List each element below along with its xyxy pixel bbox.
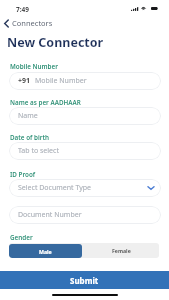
staticText: Name (18, 111, 38, 121)
button[interactable]: Back (3, 17, 54, 29)
staticText: Date of birth (10, 133, 50, 142)
staticText: Gender (10, 233, 33, 242)
staticText: Connectors (12, 18, 53, 28)
staticText: Select Document Type (18, 183, 92, 193)
button[interactable]: Tab to select (9, 142, 161, 160)
button[interactable]: Document Number (9, 206, 161, 224)
button[interactable]: Submit (0, 271, 169, 289)
button[interactable]: +91 (9, 72, 161, 90)
staticText: Mobile Number (10, 62, 58, 71)
button[interactable]: Select Document Type (9, 179, 161, 197)
staticText: Name as per AADHAAR (10, 98, 81, 107)
staticText: Submit (70, 275, 99, 286)
button[interactable]: Name (9, 107, 161, 125)
staticText: Document Number (18, 210, 82, 220)
staticText: ID Proof (10, 170, 36, 179)
staticText: Female (112, 247, 131, 254)
button[interactable]: Female (82, 243, 159, 258)
other: Back (4, 20, 9, 27)
staticText: Male (39, 248, 52, 255)
staticText: Tab to select (18, 146, 59, 156)
staticText: 7:49 (16, 5, 29, 14)
button[interactable]: Male (9, 244, 82, 258)
staticText: New Connector (7, 34, 104, 51)
staticText: Mobile Number (35, 76, 87, 86)
staticText: +91 (18, 76, 31, 86)
